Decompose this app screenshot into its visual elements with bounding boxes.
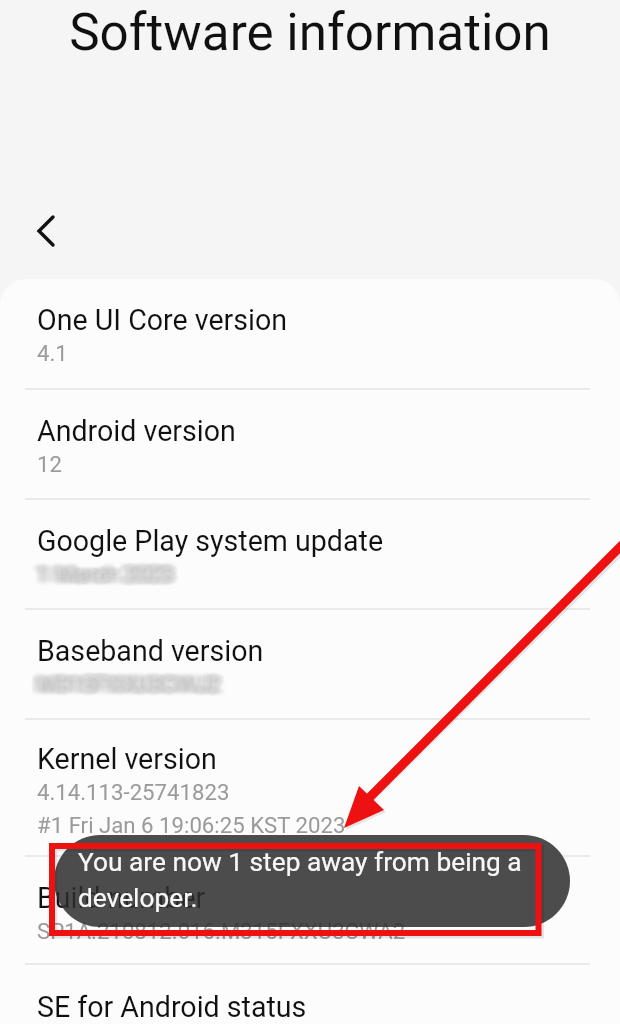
staticText: 1 March 2023 — [31, 557, 167, 583]
staticText: M315FXXU3CWJ2 — [43, 668, 226, 694]
staticText: M315FXXU3CWJ2 — [33, 675, 216, 701]
staticText: 1 March 2023 — [35, 561, 171, 587]
staticText: M315FXXU3CWJ2 — [40, 675, 223, 701]
staticText: M315FXXU3CWJ2 — [44, 672, 227, 698]
staticText: 1 March 2023 — [33, 559, 169, 585]
staticText: 1 March 2023 — [36, 560, 172, 586]
staticText: 1 March 2023 — [35, 565, 171, 591]
staticText: M315FXXU3CWJ2 — [35, 671, 218, 697]
button[interactable]: Baseband version — [0, 610, 620, 720]
staticText: M315FXXU3CWJ2 — [43, 671, 226, 697]
staticText: M315FXXU3CWJ2 — [36, 670, 219, 696]
staticText: 1 March 2023 — [45, 561, 181, 587]
staticText: M315FXXU3CWJ2 — [30, 669, 213, 695]
staticText: M315FXXU3CWJ2 — [39, 667, 222, 693]
staticText: M315FXXU3CWJ2 — [37, 670, 220, 696]
staticText: M315FXXU3CWJ2 — [33, 674, 216, 700]
staticText: 1 March 2023 — [39, 560, 175, 586]
staticText: M315FXXU3CWJ2 — [40, 668, 223, 694]
staticText: 1 March 2023 — [35, 558, 171, 584]
staticText: 1 March 2023 — [34, 561, 170, 587]
button[interactable]: Google Play system update — [0, 500, 620, 610]
staticText: M315FXXU3CWJ2 — [36, 673, 219, 699]
staticText: M315FXXU3CWJ2 — [37, 671, 220, 697]
staticText: 1 March 2023 — [45, 562, 181, 588]
staticText: M315FXXU3CWJ2 — [44, 667, 227, 693]
button[interactable]: Kernel version — [0, 720, 620, 857]
staticText: M315FXXU3CWJ2 — [32, 671, 215, 697]
staticText: 1 March 2023 — [35, 563, 171, 589]
staticText: M315FXXU3CWJ2 — [42, 668, 225, 694]
button[interactable]: Back — [16, 206, 66, 256]
staticText: Baseband version — [37, 634, 264, 668]
staticText: M315FXXU3CWJ2 — [45, 671, 228, 697]
staticText: 1 March 2023 — [36, 558, 172, 584]
staticText: 1 March 2023 — [37, 559, 173, 585]
staticText: 1 March 2023 — [37, 561, 173, 587]
staticText: 1 March 2023 — [35, 560, 171, 586]
staticText: 1 March 2023 — [40, 563, 176, 589]
staticText: M315FXXU3CWJ2 — [37, 673, 220, 699]
staticText: 1 March 2023 — [37, 562, 173, 588]
staticText: 1 March 2023 — [32, 558, 168, 584]
staticText: M315FXXU3CWJ2 — [35, 669, 218, 695]
staticText: M315FXXU3CWJ2 — [40, 669, 223, 695]
staticText: M315FXXU3CWJ2 — [37, 674, 220, 700]
staticText: M315FXXU3CWJ2 — [42, 675, 225, 701]
staticText: 1 March 2023 — [36, 561, 172, 587]
staticText: M315FXXU3CWJ2 — [31, 673, 214, 699]
staticText: M315FXXU3CWJ2 — [34, 671, 217, 697]
staticText: M315FXXU3CWJ2 — [44, 673, 227, 699]
staticText: 1 March 2023 — [44, 565, 180, 591]
staticText: 1 March 2023 — [34, 559, 170, 585]
staticText: M315FXXU3CWJ2 — [30, 675, 213, 701]
staticText: 1 March 2023 — [29, 565, 165, 591]
staticText: 1 March 2023 — [31, 559, 167, 585]
staticText: 1 March 2023 — [32, 564, 168, 590]
staticText: 1 March 2023 — [29, 564, 165, 590]
staticText: 1 March 2023 — [34, 557, 170, 583]
staticText: 1 March 2023 — [42, 563, 178, 589]
button[interactable]: SE for Android status — [0, 965, 620, 1024]
staticText: 1 March 2023 — [42, 560, 178, 586]
staticText: M315FXXU3CWJ2 — [33, 667, 216, 693]
staticText: M315FXXU3CWJ2 — [36, 672, 219, 698]
staticText: 1 March 2023 — [37, 561, 173, 587]
staticText: 1 March 2023 — [35, 559, 171, 585]
staticText: M315FXXU3CWJ2 — [44, 670, 227, 696]
staticText: 1 March 2023 — [38, 564, 174, 590]
button[interactable]: One UI Core version — [0, 279, 620, 390]
staticText: M315FXXU3CWJ2 — [41, 674, 224, 700]
staticText: 1 March 2023 — [38, 562, 174, 588]
staticText: M315FXXU3CWJ2 — [34, 669, 217, 695]
staticText: 1 March 2023 — [39, 565, 175, 591]
staticText: M315FXXU3CWJ2 — [29, 667, 212, 693]
staticText: M315FXXU3CWJ2 — [35, 673, 218, 699]
button[interactable]: Android version — [0, 390, 620, 500]
staticText: M315FXXU3CWJ2 — [38, 668, 221, 694]
button[interactable]: Build number — [0, 857, 620, 965]
staticText: 1 March 2023 — [44, 562, 180, 588]
staticText: M315FXXU3CWJ2 — [43, 675, 226, 701]
staticText: 1 March 2023 — [30, 560, 166, 586]
staticText: M315FXXU3CWJ2 — [39, 675, 222, 701]
staticText: M315FXXU3CWJ2 — [30, 673, 213, 699]
staticText: M315FXXU3CWJ2 — [33, 670, 216, 696]
staticText: 1 March 2023 — [43, 564, 179, 590]
staticText: 1 March 2023 — [33, 560, 169, 586]
staticText: M315FXXU3CWJ2 — [42, 669, 225, 695]
staticText: M315FXXU3CWJ2 — [38, 667, 221, 693]
staticText: M315FXXU3CWJ2 — [42, 672, 225, 698]
staticText: 1 March 2023 — [33, 561, 169, 587]
staticText: 1 March 2023 — [35, 562, 171, 588]
staticText: 1 March 2023 — [41, 560, 177, 586]
staticText: 1 March 2023 — [38, 561, 174, 587]
staticText: 1 March 2023 — [38, 558, 174, 584]
staticText: 1 March 2023 — [45, 560, 181, 586]
staticText: 1 March 2023 — [45, 565, 181, 591]
staticText: M315FXXU3CWJ2 — [40, 667, 223, 693]
staticText: 1 March 2023 — [41, 561, 177, 587]
staticText: 1 March 2023 — [40, 557, 176, 583]
staticText: M315FXXU3CWJ2 — [31, 672, 214, 698]
staticText: 1 March 2023 — [39, 559, 175, 585]
